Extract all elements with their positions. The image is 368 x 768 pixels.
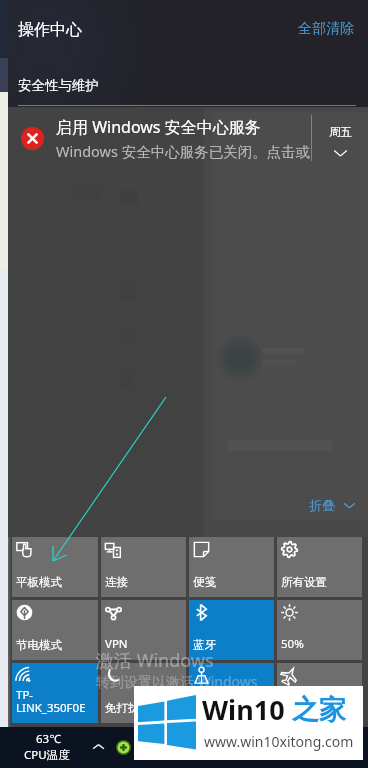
staticText: CPU温度 (24, 747, 70, 763)
staticText: 启用 Windows 安全中心服务 (56, 116, 261, 138)
button[interactable]: 节电模式 (12, 600, 98, 660)
button[interactable]: 所有设置 (277, 537, 362, 597)
button[interactable]: 全部清除 (292, 14, 360, 44)
button[interactable]: 平板模式 (12, 537, 98, 597)
staticText: 所有设置 (281, 575, 327, 589)
staticText: TP- LINK_350F0E (16, 687, 86, 715)
staticText: Win10 (202, 691, 292, 728)
button[interactable]: 飞行模式 (277, 663, 362, 723)
button[interactable]: 投影 (189, 663, 274, 723)
staticText: 50% (281, 636, 304, 652)
staticText: 折叠 (309, 497, 335, 513)
button[interactable]: 折叠 (297, 491, 368, 519)
button[interactable]: Tray app (110, 727, 136, 768)
staticText: VPN (105, 636, 128, 652)
staticText: www.win10xitong.com (204, 732, 354, 751)
button[interactable]: 蓝牙 (189, 600, 274, 660)
staticText: 免打扰 (105, 701, 140, 715)
staticText: 63℃ (36, 731, 61, 747)
staticText: 全部清除 (298, 20, 354, 38)
staticText: 飞行模式 (281, 701, 327, 715)
staticText: 投影 (193, 701, 216, 715)
button[interactable]: 启用 Windows 安全中心服务 (8, 107, 368, 169)
staticText: 周五 (329, 125, 352, 139)
staticText: 平板模式 (16, 575, 62, 589)
staticText: 之家 (292, 693, 346, 727)
staticText: 蓝牙 (193, 638, 216, 652)
staticText: 安全性与维护 (18, 77, 99, 94)
staticText: 连接 (105, 575, 128, 589)
other: Expand (333, 146, 348, 161)
staticText: 操作中心 (18, 20, 82, 40)
button[interactable]: 50% (277, 600, 362, 660)
staticText: 节电模式 (16, 638, 62, 652)
button[interactable]: 便笺 (189, 537, 274, 597)
staticText: 便笺 (193, 575, 216, 589)
button[interactable]: 连接 (101, 537, 186, 597)
staticText: 转到设置以激活 Windows (96, 672, 258, 691)
staticText: Windows 安全中心服务已关闭。点击或 (56, 141, 311, 161)
button[interactable]: TP- LINK_350F0E (12, 663, 98, 723)
button[interactable]: 免打扰 (101, 663, 186, 723)
button[interactable]: Show hidden icons (86, 727, 110, 768)
staticText: 激活 Windows (96, 648, 214, 673)
button[interactable]: VPN (101, 600, 186, 660)
